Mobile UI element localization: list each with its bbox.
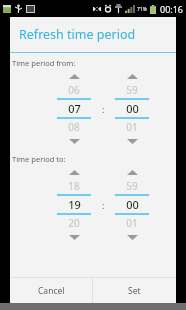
staticText: 00 <box>126 101 139 116</box>
staticText: 20 <box>68 216 80 230</box>
button[interactable]: Increment Hour <box>55 70 93 82</box>
staticText: Cancel <box>38 285 65 297</box>
staticText: 07 <box>68 101 81 116</box>
button[interactable]: Increment Minute <box>113 70 151 82</box>
button[interactable]: Increment Hour <box>55 166 93 178</box>
staticText: 59 <box>126 179 138 193</box>
button[interactable]: Decrement Minute <box>113 231 151 243</box>
staticText: 71% <box>137 6 147 13</box>
staticText: 01 <box>126 120 138 134</box>
button[interactable]: Decrement Minute <box>113 135 151 147</box>
staticText: 01 <box>126 216 138 230</box>
staticText: : <box>102 199 105 211</box>
button[interactable]: Decrement Hour <box>55 231 93 243</box>
button[interactable]: Set <box>93 278 176 303</box>
staticText: 08 <box>68 120 80 134</box>
staticText: Time period to: <box>12 154 66 164</box>
staticText: 00:16 <box>160 3 184 15</box>
button[interactable]: Increment Minute <box>113 166 151 178</box>
staticText: 19 <box>68 197 81 212</box>
staticText: 18 <box>68 179 80 193</box>
button[interactable]: Cancel <box>10 278 92 303</box>
button[interactable]: Decrement Hour <box>55 135 93 147</box>
staticText: Refresh time period <box>19 26 136 43</box>
staticText: Set <box>128 285 141 297</box>
staticText: 06 <box>68 83 80 97</box>
staticText: 00 <box>126 197 139 212</box>
staticText: 59 <box>126 83 138 97</box>
staticText: Time period from: <box>12 58 76 68</box>
staticText: : <box>102 103 105 115</box>
